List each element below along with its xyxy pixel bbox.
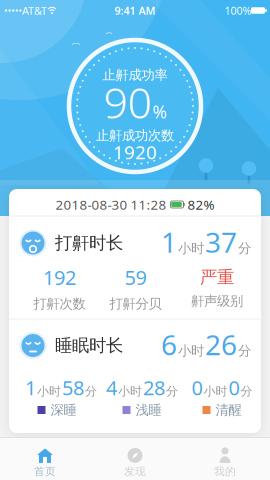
staticText: 192: [43, 264, 76, 291]
staticText: 28: [143, 374, 165, 401]
staticText: 分: [166, 384, 178, 399]
staticText: 清醒: [215, 402, 241, 418]
staticText: 6: [161, 326, 177, 363]
staticText: 26: [205, 326, 237, 363]
staticText: 小时: [203, 384, 227, 399]
staticText: 止鼾成功次数: [96, 127, 174, 144]
staticText: 1920: [113, 140, 157, 164]
staticText: 睡眠时长: [55, 335, 123, 356]
staticText: 59: [124, 264, 146, 291]
staticText: 100%: [224, 3, 251, 18]
staticText: 发现: [124, 465, 146, 478]
staticText: 1: [161, 223, 177, 261]
staticText: 深睡: [50, 402, 76, 418]
staticText: 0: [191, 374, 202, 401]
staticText: 小时: [178, 240, 204, 257]
staticText: 0: [228, 374, 239, 401]
staticText: 9:41 AM: [114, 3, 155, 18]
staticText: 90: [103, 74, 151, 130]
staticText: 打鼾时长: [55, 232, 123, 254]
staticText: AT&T: [22, 3, 47, 18]
staticText: 58: [62, 374, 84, 401]
staticText: 82%: [187, 196, 214, 213]
staticText: 打鼾次数: [33, 296, 85, 312]
staticText: 首页: [34, 465, 56, 478]
button[interactable]: 首页: [3, 447, 87, 479]
staticText: 分: [85, 384, 97, 399]
staticText: 分: [238, 343, 251, 359]
staticText: %: [152, 100, 166, 123]
button[interactable]: 我的: [183, 447, 267, 479]
staticText: 小时: [178, 343, 204, 359]
staticText: 浅睡: [135, 402, 161, 418]
staticText: 1: [25, 374, 36, 401]
staticText: 打鼾分贝: [109, 296, 161, 312]
staticText: 止鼾成功率: [102, 67, 167, 83]
staticText: 我的: [214, 465, 236, 478]
staticText: 严重: [200, 267, 234, 288]
staticText: 2018-08-30 11:28: [55, 196, 166, 213]
staticText: 小时: [37, 384, 61, 399]
staticText: 小时: [118, 384, 142, 399]
button[interactable]: 发现: [93, 447, 177, 479]
staticText: 鼾声级别: [191, 293, 243, 309]
staticText: 分: [240, 384, 252, 399]
staticText: 37: [205, 223, 237, 261]
staticText: 4: [106, 374, 117, 401]
staticText: 分: [238, 240, 251, 257]
